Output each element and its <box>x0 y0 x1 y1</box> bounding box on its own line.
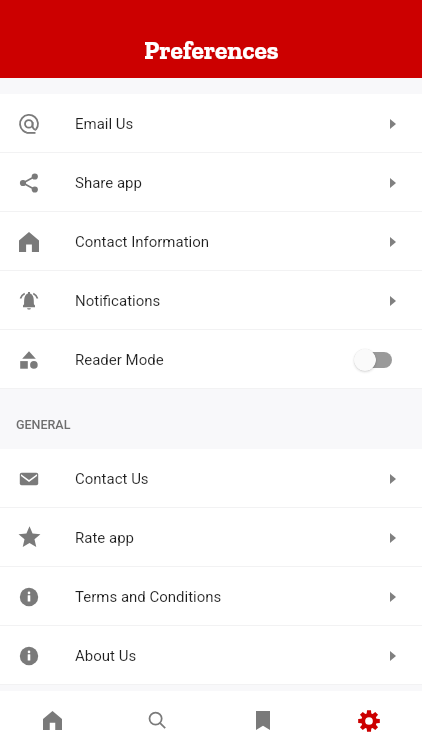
staticText: Contact Information <box>75 233 210 251</box>
button[interactable]: Settings <box>316 691 422 750</box>
button[interactable]: Search <box>105 691 210 750</box>
button[interactable]: About Us <box>0 626 422 685</box>
staticText: About Us <box>75 647 137 665</box>
button[interactable]: Share app <box>0 153 422 212</box>
staticText: Contact Us <box>75 470 149 488</box>
button[interactable]: Reader Mode <box>0 330 422 389</box>
staticText: Rate app <box>75 529 134 547</box>
button[interactable]: Bookmarks <box>210 691 316 750</box>
button[interactable]: Contact Information <box>0 212 422 271</box>
button[interactable]: Email Us <box>0 94 422 153</box>
button[interactable]: Terms and Conditions <box>0 567 422 626</box>
staticText: GENERAL <box>16 417 71 432</box>
staticText: Terms and Conditions <box>75 588 222 606</box>
button[interactable]: Contact Us <box>0 449 422 508</box>
staticText: Email Us <box>75 115 134 133</box>
staticText: Reader Mode <box>75 351 164 369</box>
staticText: Notifications <box>75 292 161 310</box>
staticText: Share app <box>75 174 142 192</box>
staticText: Preferences <box>144 35 279 66</box>
button[interactable]: Notifications <box>0 271 422 330</box>
button[interactable]: Rate app <box>0 508 422 567</box>
button[interactable]: Home <box>0 691 105 750</box>
